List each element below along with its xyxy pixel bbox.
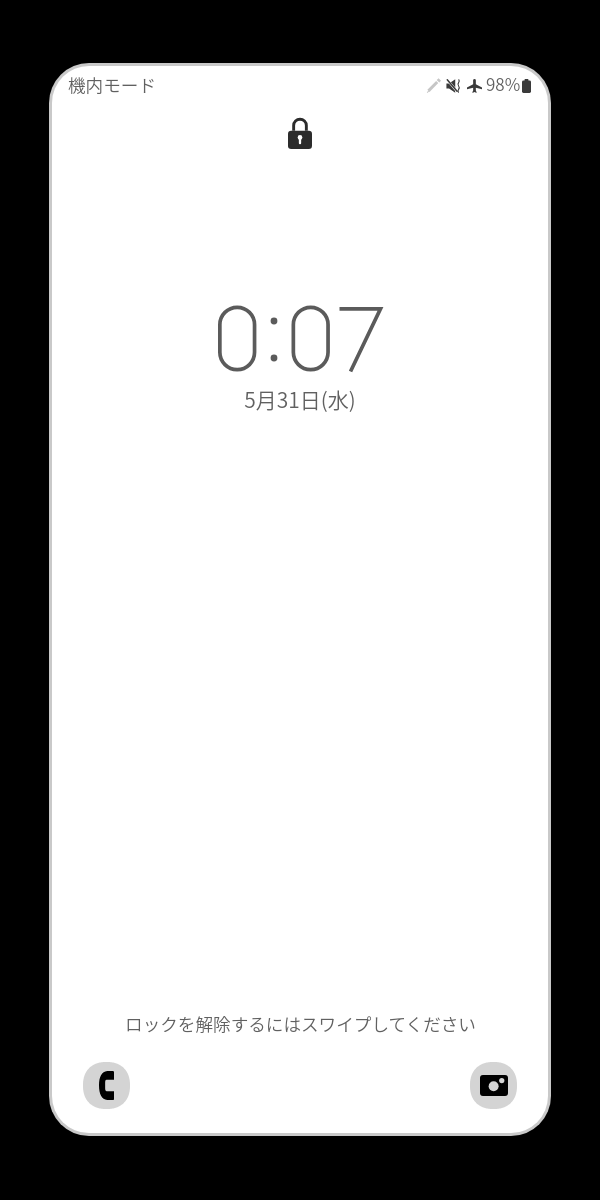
staticText: ロックを解除するにはスワイプしてください [125, 1011, 476, 1036]
button[interactable]: Camera [470, 1062, 517, 1109]
staticText: 98% [486, 71, 521, 96]
staticText: 機内モード [68, 72, 156, 97]
staticText: 5月31日(水) [244, 384, 356, 414]
button[interactable]: Phone [83, 1062, 130, 1109]
